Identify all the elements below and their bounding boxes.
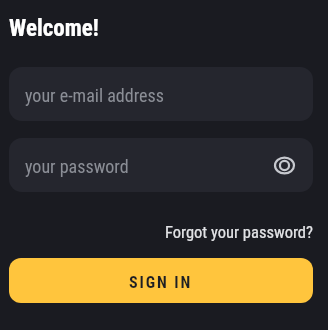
button[interactable]: your password <box>9 138 313 192</box>
button[interactable]: your e-mail address <box>9 67 313 121</box>
staticText: Welcome! <box>9 15 99 42</box>
button[interactable] <box>275 157 294 174</box>
button[interactable]: Forgot your password? <box>165 223 313 242</box>
staticText: your password <box>25 156 129 177</box>
staticText: SIGN IN <box>129 273 193 292</box>
button[interactable]: SIGN IN <box>9 258 313 303</box>
staticText: your e-mail address <box>25 85 164 106</box>
